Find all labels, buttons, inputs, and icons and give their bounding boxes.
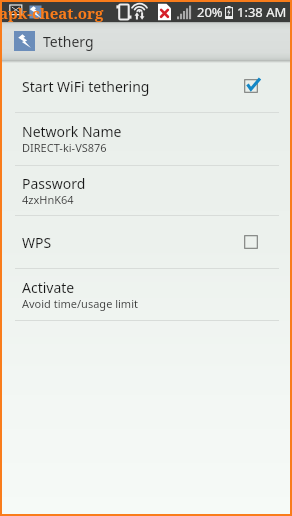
staticText: 1:38 AM (237, 3, 287, 21)
button[interactable]: WPS (2, 216, 290, 268)
button[interactable]: Password (2, 166, 290, 215)
staticText: DIRECT-ki-VS876 (22, 140, 107, 155)
staticText: apk-cheat.org (0, 3, 104, 23)
staticText: Network Name (22, 122, 122, 141)
staticText: Tetherg (43, 32, 94, 51)
staticText: Start WiFi tethering (22, 77, 150, 96)
staticText: 4zxHnK64 (22, 192, 74, 207)
staticText: Password (22, 174, 86, 193)
other: Toggle WPS (242, 233, 260, 251)
button[interactable]: Activate (2, 269, 290, 320)
staticText: Activate (22, 278, 75, 297)
button[interactable]: Start WiFi tethering (2, 60, 290, 112)
staticText: 20% (197, 3, 223, 21)
other: Toggle Start WiFi tethering (242, 77, 260, 95)
staticText: WPS (22, 233, 52, 252)
staticText: Avoid time/usage limit (22, 296, 138, 311)
button[interactable]: Network Name (2, 113, 290, 165)
